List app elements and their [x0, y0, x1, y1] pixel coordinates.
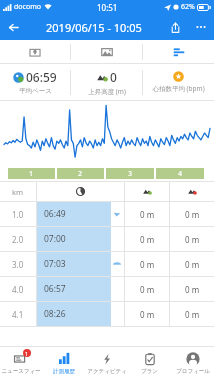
button[interactable]: 4.1	[0, 302, 214, 326]
button[interactable]: プロフィール	[171, 347, 214, 380]
button[interactable]: 心拍数平均 (bpm)	[143, 64, 214, 100]
staticText: 0 m	[140, 259, 155, 270]
staticText: 62%	[181, 2, 195, 12]
staticText: 0 m	[140, 284, 155, 295]
staticText: 4.1	[12, 309, 24, 320]
button[interactable]: アクティビティ	[85, 347, 128, 380]
staticText: 4.0	[12, 284, 24, 295]
staticText: 平均ペース	[19, 87, 52, 95]
staticText: 06:49	[44, 208, 66, 220]
staticText: 0 m	[140, 234, 155, 245]
staticText: 0 m	[185, 284, 200, 295]
staticText: プラン	[141, 368, 158, 375]
staticText: アクティビティ	[87, 368, 127, 375]
button[interactable]: 1	[0, 347, 42, 380]
staticText: 2	[78, 169, 83, 179]
staticText: 1	[29, 169, 34, 179]
staticText: km	[12, 187, 24, 197]
staticText: 0 m	[185, 209, 200, 220]
staticText: ニュースフィード	[0, 368, 42, 375]
staticText: 07:03	[44, 258, 66, 270]
button[interactable]: Photos tab	[71, 40, 142, 63]
staticText: 上昇高度 (m)	[88, 87, 126, 96]
button[interactable]: 2.0	[0, 227, 214, 251]
button[interactable]: Charts tab	[143, 40, 214, 63]
staticText: 06:59	[26, 69, 57, 85]
staticText: 1	[25, 350, 29, 357]
staticText: 0 m	[140, 209, 155, 220]
staticText: 0 m	[185, 234, 200, 245]
staticText: 1.0	[12, 209, 24, 220]
staticText: 0 m	[140, 309, 155, 320]
button[interactable]: 計測履歴	[42, 347, 85, 380]
staticText: 06:57	[44, 283, 66, 295]
button[interactable]: 3.0	[0, 252, 214, 276]
staticText: 4	[178, 169, 183, 179]
staticText: 心拍数平均 (bpm)	[152, 84, 205, 93]
staticText: 計測履歴	[53, 368, 75, 375]
staticText: 07:00	[44, 233, 66, 245]
button[interactable]: More options	[188, 14, 214, 40]
button[interactable]: Share	[162, 14, 188, 40]
button[interactable]: Back	[0, 14, 26, 40]
staticText: 0 m	[185, 259, 200, 270]
button[interactable]: 0	[71, 64, 142, 100]
button[interactable]: Map tab	[0, 40, 70, 63]
staticText: 2019/06/15 - 10:05	[46, 20, 142, 35]
button[interactable]: 4.0	[0, 277, 214, 301]
staticText: 0	[110, 69, 117, 85]
staticText: プロフィール	[176, 368, 210, 375]
staticText: 2.0	[12, 234, 24, 245]
staticText: 08:26	[44, 308, 66, 320]
button[interactable]: 06:59	[0, 64, 70, 100]
staticText: 0 m	[185, 309, 200, 320]
button[interactable]: 1.0	[0, 202, 214, 226]
staticText: 10:51	[97, 2, 118, 13]
staticText: 3.0	[12, 259, 24, 270]
staticText: 3	[128, 169, 133, 179]
button[interactable]: プラン	[128, 347, 171, 380]
staticText: docomo	[14, 2, 41, 12]
